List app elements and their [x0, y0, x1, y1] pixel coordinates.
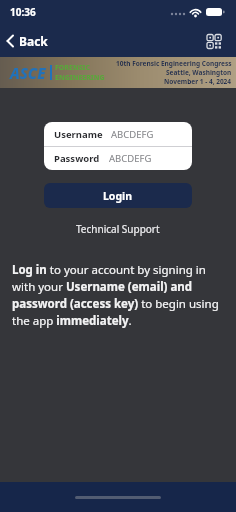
staticText: November 1 - 4, 2024	[164, 77, 232, 86]
button[interactable]: Technical Support	[0, 222, 236, 236]
staticText: Log in to your account by signing in wit…	[12, 262, 219, 329]
button[interactable]: Password	[44, 147, 192, 170]
staticText: Technical Support	[76, 222, 160, 236]
button[interactable]: Login	[44, 183, 192, 208]
button[interactable]: Username	[44, 122, 192, 146]
staticText: Back	[19, 33, 48, 49]
staticText: ABCDEFG	[111, 128, 154, 141]
staticText: ASCE	[10, 63, 46, 83]
staticText: ENGINEERING	[55, 73, 105, 83]
staticText: ABCDEFG	[109, 152, 152, 165]
staticText: Login	[103, 189, 133, 203]
staticText: Username	[54, 128, 103, 141]
button[interactable]: ASCE	[0, 57, 236, 88]
staticText: Password	[54, 152, 100, 165]
staticText: 10th Forensic Engineering Congress	[116, 59, 232, 68]
staticText: Seattle, Washington	[166, 68, 232, 77]
staticText: 10:36	[10, 5, 36, 19]
button[interactable]: Back	[6, 33, 48, 49]
button[interactable]	[206, 34, 223, 49]
staticText: FORENSIC	[55, 63, 91, 73]
